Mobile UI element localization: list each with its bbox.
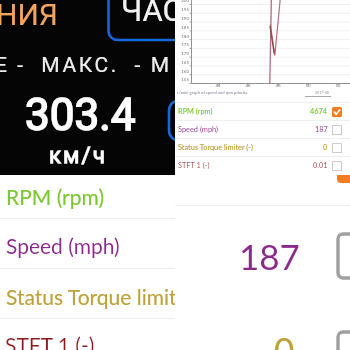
staticText: RPM (rpm)	[6, 184, 105, 209]
button[interactable]: Unchecked	[332, 161, 342, 171]
staticText: 2017-08	[315, 90, 329, 94]
staticText: Status Torque limiter (-)	[6, 284, 175, 309]
staticText: STFT 1 (-)	[5, 332, 95, 350]
staticText: 44	[211, 83, 225, 88]
staticText: Е - МАКС. - МАКС	[0, 53, 170, 78]
button[interactable]: Toggle series	[337, 175, 350, 183]
staticText: 160	[175, 69, 189, 74]
staticText: 195	[175, 7, 189, 12]
staticText: Speed (mph)	[6, 233, 120, 258]
staticText: 52	[331, 83, 345, 88]
staticText: 170	[175, 51, 189, 56]
staticText: 180	[175, 34, 189, 39]
staticText: STFT 1 (-)	[178, 161, 313, 170]
staticText: 185	[175, 25, 189, 30]
staticText: 187	[239, 235, 300, 277]
staticText: 0	[323, 143, 328, 152]
staticText: RPM (rpm)	[178, 107, 310, 116]
staticText: НИЯ	[0, 0, 58, 32]
staticText: 0.01	[313, 161, 328, 170]
staticText: 190	[175, 16, 189, 21]
button[interactable]: Unchecked	[332, 143, 342, 153]
staticText: ЧАС	[121, 0, 175, 28]
staticText: 200	[175, 0, 189, 3]
button[interactable]: Speed (mph)	[175, 121, 350, 138]
staticText: 187	[315, 125, 328, 134]
staticText: км/ч	[49, 143, 108, 169]
staticText: 175	[175, 42, 189, 47]
staticText: 46	[241, 83, 255, 88]
button[interactable]: RPM (rpm)	[175, 103, 350, 120]
button[interactable]: Status Torque limiter (-)	[175, 139, 350, 156]
staticText: 4674	[310, 107, 328, 116]
button[interactable]: Unchecked	[332, 125, 342, 135]
staticText: Status Torque limiter (-)	[178, 143, 323, 152]
staticText: Speed (mph)	[178, 125, 315, 134]
staticText: 165	[175, 60, 189, 65]
button[interactable]: STFT 1 (-)	[175, 157, 350, 174]
staticText: 0	[274, 328, 295, 350]
staticText: t (min) graph of speed and rpm priority	[177, 90, 248, 95]
button[interactable]: Checked	[332, 107, 342, 117]
staticText: 303.4	[25, 89, 136, 141]
staticText: 155	[175, 77, 189, 82]
staticText: 50	[301, 83, 315, 88]
staticText: 48	[271, 83, 285, 88]
